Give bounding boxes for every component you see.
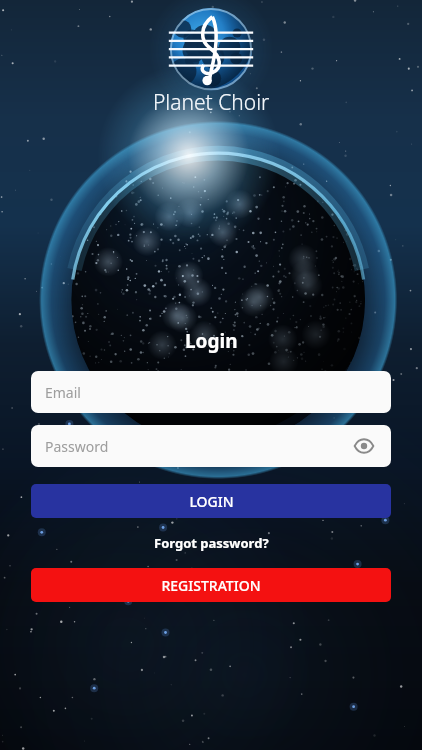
staticText: LOGIN <box>189 492 234 511</box>
button[interactable]: Password <box>31 425 391 467</box>
staticText: REGISTRATION <box>161 576 261 595</box>
button[interactable]: REGISTRATION <box>31 568 391 602</box>
button[interactable]: Forgot password? <box>146 531 277 555</box>
button[interactable]: LOGIN <box>31 484 391 518</box>
staticText: Password <box>45 437 109 456</box>
button[interactable]: Email <box>31 371 391 413</box>
button[interactable]: Show password <box>351 433 377 459</box>
staticText: Email <box>45 383 81 402</box>
staticText: Planet Choir <box>153 88 270 117</box>
staticText: Login <box>185 328 238 354</box>
staticText: Forgot password? <box>154 534 269 552</box>
